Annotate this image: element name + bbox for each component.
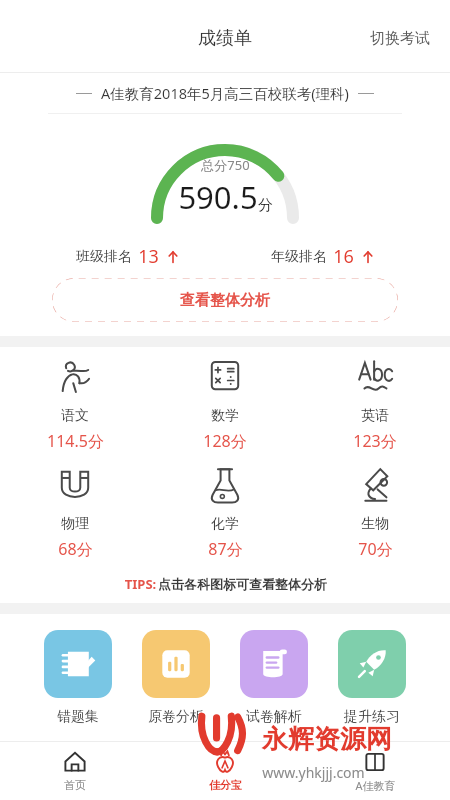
button[interactable]: A佳教育 [300,744,450,799]
staticText: 87分 [208,538,243,560]
staticText: 语文 [61,407,89,425]
button[interactable]: 查看整体分析 [52,278,398,322]
staticText: 16 [333,244,354,269]
staticText: www.yhkjjj.com [262,763,365,782]
staticText: 年级排名 [271,248,327,266]
staticText: 试卷解析 [246,708,302,726]
staticText: 123分 [353,430,397,452]
staticText: 原卷分析 [148,708,204,726]
button[interactable]: 化学 [150,463,300,560]
staticText: 13 [138,244,159,269]
button[interactable]: 数学 [150,355,300,452]
button[interactable]: 年级排名 [225,244,420,269]
button[interactable]: 试卷解析 [240,630,308,726]
staticText: 点击各科图标可查看整体分析 [158,576,327,592]
staticText: 生物 [361,515,389,533]
staticText: 提升练习 [344,708,400,726]
staticText: 首页 [64,778,86,792]
staticText: 68分 [58,538,93,560]
staticText: 查看整体分析 [180,291,270,310]
button[interactable]: 提升练习 [338,630,406,726]
staticText: 物理 [61,515,89,533]
button[interactable]: 英语 [300,355,450,452]
staticText: A佳教育 [355,778,396,793]
staticText: 128分 [203,430,247,452]
staticText: 英语 [361,407,389,425]
staticText: 永辉资源网 [262,723,392,756]
staticText: 70分 [358,538,393,560]
button[interactable]: 佳分宝 [150,744,300,798]
staticText: TIPS: [123,575,158,593]
staticText: 成绩单 [198,27,252,50]
staticText: 分 [258,196,273,215]
staticText: 590.5 [178,176,258,218]
staticText: 错题集 [57,708,99,726]
staticText: 114.5分 [47,430,104,452]
button[interactable]: 首页 [0,744,150,798]
staticText: 切换考试 [370,29,430,48]
button[interactable]: 生物 [300,463,450,560]
button[interactable]: 班级排名 [30,244,225,269]
staticText: 化学 [211,515,239,533]
staticText: 佳分宝 [209,778,242,792]
button[interactable]: 切换考试 [350,19,450,58]
button[interactable]: 物理 [0,463,150,560]
staticText: 总分750 [201,156,250,174]
button[interactable]: 原卷分析 [142,630,210,726]
button[interactable]: 错题集 [44,630,112,726]
staticText: 数学 [211,407,239,425]
staticText: 班级排名 [76,248,132,266]
staticText: A佳教育2018年5月高三百校联考(理科) [101,83,349,103]
button[interactable]: 语文 [0,355,150,452]
